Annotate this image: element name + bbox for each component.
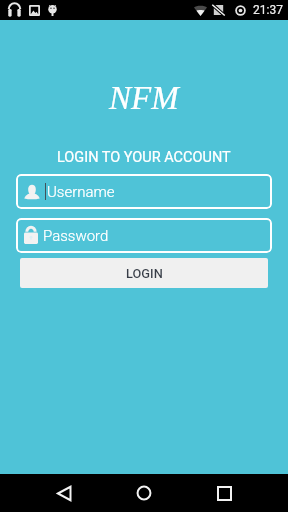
button[interactable]: Home	[122, 474, 166, 512]
button[interactable]: LOGIN	[20, 258, 268, 288]
staticText: NFM	[109, 80, 179, 117]
button[interactable]: Username	[16, 174, 272, 209]
button[interactable]: Back	[42, 474, 86, 512]
staticText: LOGIN	[126, 266, 163, 281]
button[interactable]: Recents	[202, 474, 246, 512]
staticText: Username	[47, 183, 115, 201]
staticText: LOGIN TO YOUR ACCOUNT	[57, 149, 231, 166]
button[interactable]: Password	[16, 218, 272, 253]
staticText: Password	[43, 227, 109, 245]
staticText: 21:37	[253, 3, 283, 17]
